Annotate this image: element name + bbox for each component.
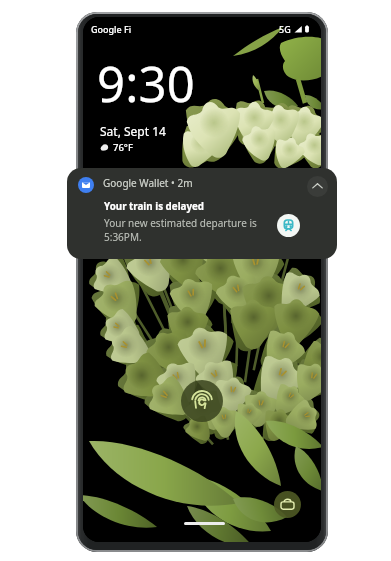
staticText: Google Wallet • 2m [103, 176, 193, 190]
staticText: Your train is delayed [104, 200, 205, 213]
button[interactable]: Unlock with fingerprint [181, 380, 223, 422]
button[interactable]: Google Wallet • 2m [67, 168, 337, 259]
button[interactable]: Wallet [274, 491, 301, 518]
staticText: 9:30 [97, 50, 196, 117]
staticText: Sat, Sept 14 [100, 123, 166, 139]
button[interactable]: Transit details [277, 214, 300, 237]
staticText: Your new estimated departure is 5:36PM. [104, 216, 257, 244]
staticText: 5G [279, 23, 291, 35]
staticText: 76°F [113, 141, 133, 154]
staticText: Google Fi [91, 23, 132, 35]
button[interactable]: Collapse notification [307, 176, 328, 197]
